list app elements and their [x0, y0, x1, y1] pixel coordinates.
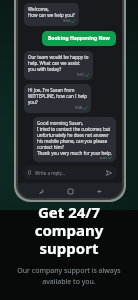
staticText: Welcome, How can we help you?: [28, 6, 75, 18]
staticText: Our team would be happy to help. What ca…: [28, 54, 89, 72]
staticText: 9:57: [77, 72, 84, 77]
button[interactable]: Hi Joe, I'm Susan from WITTEPLINE, how c…: [24, 84, 91, 113]
button[interactable]: Good morning Susan, I tried to contact t…: [33, 117, 116, 162]
staticText: Booking Happening Now: [48, 35, 110, 42]
staticText: Get 24/7 company support: [10, 202, 128, 259]
button[interactable]: Home: [64, 185, 76, 197]
staticText: 9:01: [100, 156, 107, 159]
staticText: Good morning Susan, I tried to contact t…: [37, 120, 112, 156]
staticText: Our company support is always available …: [17, 266, 121, 286]
button[interactable]: Send: [105, 169, 113, 177]
staticText: Hi Joe, I'm Susan from WITTEPLINE, how c…: [28, 87, 87, 105]
button[interactable]: Booking Happening Now: [42, 31, 116, 46]
button[interactable]: Recents: [35, 185, 47, 197]
staticText: Write a reply...: [35, 170, 66, 176]
staticText: 9:58: [75, 105, 82, 110]
staticText: 9:54: [63, 18, 70, 23]
button[interactable]: Back: [93, 185, 105, 197]
button[interactable]: Welcome, How can we help you?: [24, 3, 79, 26]
button[interactable]: Write a reply...: [23, 166, 117, 179]
button[interactable]: Our team would be happy to help. What ca…: [24, 51, 93, 80]
